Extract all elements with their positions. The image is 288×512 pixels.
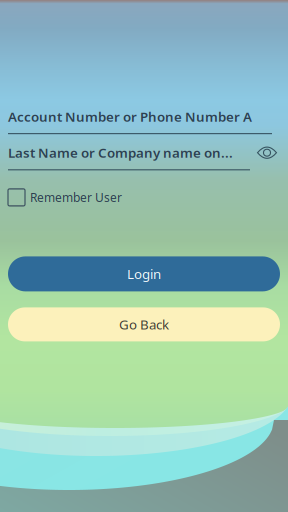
staticText: Login <box>127 265 161 283</box>
button[interactable]: Go Back <box>8 307 280 341</box>
button[interactable]: Login <box>8 256 280 291</box>
staticText: Last Name or Company name on... <box>8 144 233 161</box>
staticText: Account Number or Phone Number A <box>8 108 252 125</box>
staticText: Remember User <box>30 189 122 205</box>
button[interactable]: Remember User <box>8 188 280 206</box>
staticText: Go Back <box>119 315 169 333</box>
button[interactable]: Show password <box>254 143 280 163</box>
